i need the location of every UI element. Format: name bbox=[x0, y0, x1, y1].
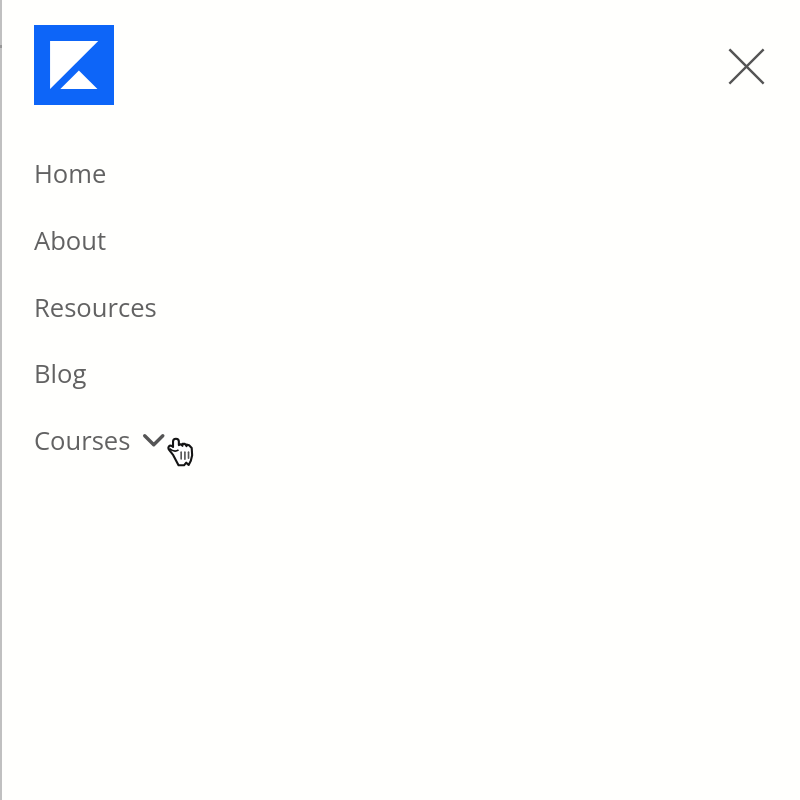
button[interactable]: Logo bbox=[34, 25, 114, 105]
button[interactable]: Resources bbox=[0, 274, 800, 341]
staticText: Blog bbox=[34, 356, 87, 391]
button[interactable]: About bbox=[0, 207, 800, 274]
button[interactable]: Home bbox=[0, 140, 800, 207]
staticText: About bbox=[34, 223, 107, 258]
button[interactable]: Courses bbox=[0, 407, 800, 474]
staticText: Resources bbox=[34, 290, 157, 325]
staticText: Home bbox=[34, 156, 107, 191]
button[interactable]: Close bbox=[713, 33, 779, 99]
button[interactable]: Blog bbox=[0, 340, 800, 407]
staticText: Courses bbox=[34, 423, 131, 458]
button[interactable]: Expand Courses bbox=[138, 425, 170, 455]
